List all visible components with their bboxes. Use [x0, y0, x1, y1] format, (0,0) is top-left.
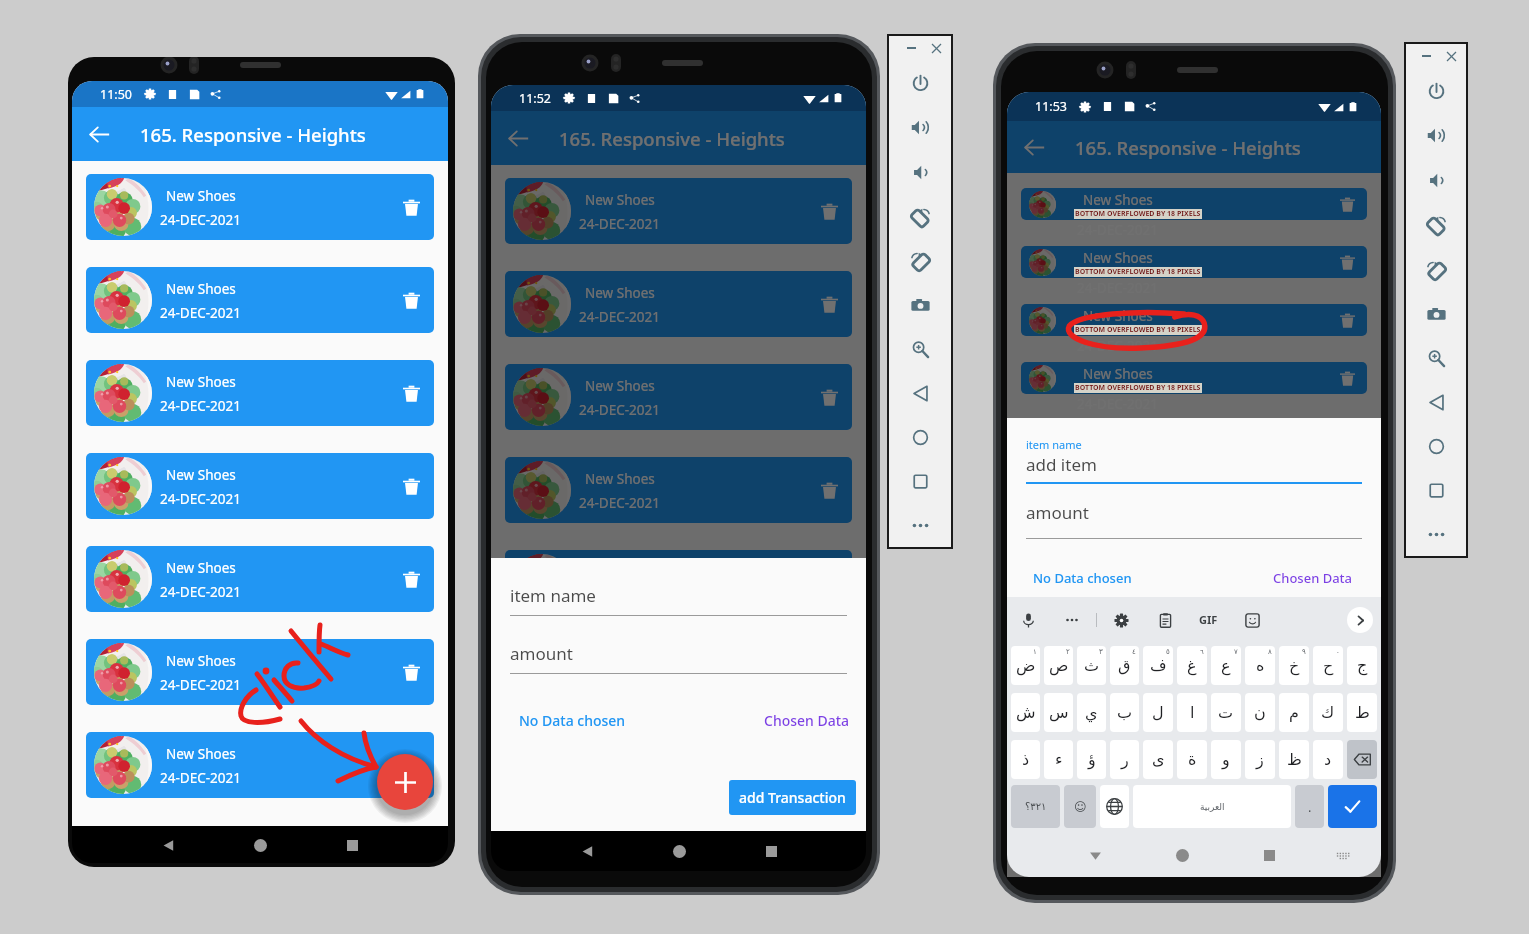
button[interactable]: Delete [1334, 597, 1361, 624]
button[interactable]: New Shoes [86, 639, 434, 705]
button[interactable] [1021, 420, 1367, 452]
button[interactable]: Rotate right [1406, 248, 1466, 292]
button[interactable]: العربية [1133, 785, 1291, 828]
button[interactable]: Clipboard [1154, 609, 1176, 631]
button[interactable]: ق [1110, 646, 1139, 685]
button[interactable]: خ [1279, 646, 1309, 685]
button[interactable]: Volume up [1406, 113, 1466, 158]
button[interactable]: ر [1110, 740, 1139, 779]
button[interactable]: ا [1177, 693, 1207, 732]
button[interactable]: Back [1014, 127, 1054, 167]
button[interactable] [1021, 594, 1367, 626]
button[interactable]: ن [1245, 693, 1275, 732]
button[interactable]: Volume down [1406, 158, 1466, 203]
button[interactable]: د [1313, 740, 1343, 779]
button[interactable]: More [1406, 512, 1466, 556]
button[interactable]: ط [1347, 693, 1377, 732]
button[interactable]: Home [889, 415, 951, 459]
button[interactable] [1021, 362, 1367, 394]
button[interactable]: ى [1143, 740, 1173, 779]
button[interactable]: More options [1061, 609, 1083, 631]
button[interactable]: Delete [1334, 365, 1361, 392]
button[interactable]: ه [1245, 646, 1275, 685]
button[interactable]: Rotate left [1406, 203, 1466, 248]
button[interactable]: Volume down [889, 150, 951, 195]
button[interactable]: Close [928, 40, 944, 56]
button[interactable]: Voice input [1017, 609, 1039, 631]
button[interactable]: Rotate right [889, 239, 951, 283]
button[interactable]: Home [1406, 424, 1466, 468]
button[interactable]: Delete [1334, 829, 1361, 856]
button[interactable]: Take screenshot [889, 283, 951, 327]
button[interactable]: Chosen Data [758, 708, 856, 733]
button[interactable]: Language [1100, 785, 1129, 828]
button[interactable]: Overview [1406, 468, 1466, 512]
button[interactable]: ك [1313, 693, 1343, 732]
button[interactable]: Back [889, 371, 951, 415]
button[interactable] [1021, 246, 1367, 278]
button[interactable]: Delete [812, 380, 846, 414]
button[interactable]: ح [1313, 646, 1343, 685]
button[interactable]: Delete [394, 655, 428, 689]
button[interactable]: Delete [394, 469, 428, 503]
button[interactable]: Switch keyboard [1326, 838, 1360, 872]
button[interactable]: ش [1011, 693, 1040, 732]
button[interactable]: Back [79, 114, 119, 154]
button[interactable]: Settings [1110, 609, 1132, 631]
button[interactable]: Expand [1347, 607, 1373, 633]
button[interactable]: Volume up [889, 105, 951, 150]
button[interactable]: No Data chosen [513, 708, 632, 733]
button[interactable]: Delete [1334, 481, 1361, 508]
button[interactable]: Delete [394, 376, 428, 410]
button[interactable]: Back [570, 834, 604, 868]
button[interactable]: ل [1143, 693, 1173, 732]
button[interactable]: Delete [394, 562, 428, 596]
button[interactable]: Recents [754, 834, 788, 868]
button[interactable]: . [1295, 785, 1324, 828]
button[interactable]: Delete [812, 194, 846, 228]
button[interactable]: Zoom [889, 327, 951, 371]
button[interactable]: Rotate left [889, 195, 951, 239]
button[interactable]: Delete [1334, 249, 1361, 276]
button[interactable]: Home [662, 834, 696, 868]
button[interactable]: ء [1044, 740, 1073, 779]
button[interactable] [1021, 652, 1367, 684]
button[interactable]: Delete [394, 748, 428, 782]
button[interactable]: add Transaction [729, 780, 856, 815]
button[interactable]: Enter [1328, 785, 1377, 828]
button[interactable]: Minimize [1418, 48, 1434, 64]
button[interactable]: Backspace [1347, 740, 1377, 779]
button[interactable]: Back [498, 118, 538, 158]
button[interactable]: Delete [1334, 191, 1361, 218]
button[interactable]: Take screenshot [1406, 292, 1466, 336]
button[interactable]: Minimize [903, 40, 919, 56]
button[interactable] [1021, 188, 1367, 220]
button[interactable]: New Shoes [86, 267, 434, 333]
button[interactable]: م [1279, 693, 1309, 732]
button[interactable]: ث [1077, 646, 1106, 685]
button[interactable]: New Shoes [86, 453, 434, 519]
button[interactable]: Back [151, 828, 185, 862]
button[interactable]: ٣٢١؟ [1011, 785, 1060, 828]
button[interactable]: No Data chosen [1025, 567, 1140, 589]
button[interactable]: New Shoes [505, 736, 852, 802]
button[interactable]: Delete [394, 190, 428, 224]
button[interactable]: ت [1211, 693, 1241, 732]
button[interactable]: Add transaction [377, 754, 433, 810]
button[interactable]: Zoom [1406, 336, 1466, 380]
button[interactable]: Back [1406, 380, 1466, 424]
button[interactable]: New Shoes [86, 174, 434, 240]
button[interactable]: Power [889, 60, 951, 105]
button[interactable]: New Shoes [505, 457, 852, 523]
button[interactable]: ظ [1279, 740, 1309, 779]
button[interactable] [1021, 826, 1367, 858]
button[interactable]: Delete [812, 473, 846, 507]
button[interactable]: More [889, 503, 951, 547]
button[interactable]: ف [1143, 646, 1173, 685]
button[interactable]: New Shoes [86, 360, 434, 426]
button[interactable]: New Shoes [505, 364, 852, 430]
